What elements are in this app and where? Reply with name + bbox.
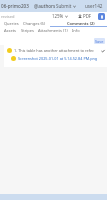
staticText: Comments (2) bbox=[67, 21, 95, 26]
staticText: Assets bbox=[4, 28, 17, 33]
button[interactable]: Stripes bbox=[21, 28, 34, 33]
staticText: Attachments (1) bbox=[38, 28, 68, 33]
button[interactable]: Attachments (1) bbox=[38, 28, 68, 33]
button[interactable]: Changes (6) bbox=[23, 21, 46, 26]
button[interactable]: Assets bbox=[4, 28, 17, 33]
button[interactable]: Submit bbox=[56, 3, 76, 9]
staticText: Submit bbox=[56, 3, 72, 9]
staticText: @authors bbox=[34, 3, 56, 9]
staticText: Screenshot 2025-01-01 at 5.14.52.84 PM.p… bbox=[18, 56, 101, 61]
button[interactable]: Info bbox=[72, 28, 80, 33]
button[interactable]: 1. This table has another attachment to … bbox=[4, 48, 107, 53]
button[interactable]: Save bbox=[94, 38, 105, 44]
staticText: user142 bbox=[85, 3, 103, 9]
button[interactable]: Screenshot 2025-01-01 at 5.14.52.84 PM.p… bbox=[4, 56, 107, 61]
button[interactable]: PDF bbox=[78, 13, 92, 19]
staticText: 06-primo203 bbox=[1, 3, 29, 9]
button[interactable]: 125% bbox=[52, 13, 68, 19]
staticText: Stripes bbox=[21, 28, 34, 33]
staticText: 1. This table has another attachment to … bbox=[14, 48, 101, 53]
staticText: 125% bbox=[52, 13, 64, 19]
button[interactable]: Comments (2) bbox=[67, 21, 95, 26]
button[interactable]: Save document bbox=[98, 13, 105, 20]
staticText: Info bbox=[72, 28, 80, 33]
staticText: PDF bbox=[83, 13, 92, 19]
staticText: Save bbox=[95, 39, 104, 44]
staticText: Changes (6) bbox=[23, 21, 46, 26]
staticText: Queries bbox=[4, 21, 19, 26]
button[interactable]: Queries bbox=[4, 21, 19, 26]
staticText: revised bbox=[1, 14, 15, 19]
